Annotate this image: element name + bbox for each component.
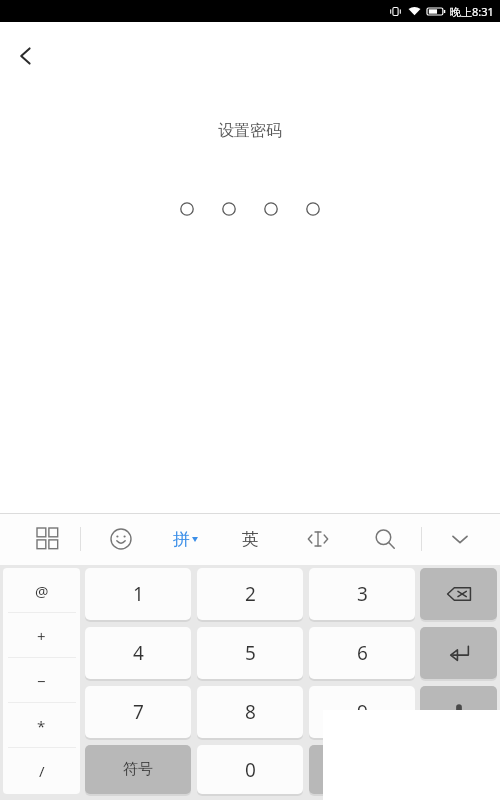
- button[interactable]: 0: [197, 745, 303, 794]
- staticText: 8: [245, 699, 256, 725]
- button[interactable]: Emoji: [97, 515, 145, 563]
- button[interactable]: Microphone: [420, 686, 497, 738]
- button[interactable]: @: [3, 568, 80, 613]
- staticText: +: [37, 626, 46, 646]
- staticText: 2: [245, 581, 256, 607]
- button[interactable]: 符号: [85, 745, 191, 794]
- button[interactable]: /: [3, 748, 80, 793]
- button[interactable]: 1: [85, 568, 191, 620]
- button[interactable]: 6: [309, 627, 415, 679]
- staticText: 1: [133, 581, 144, 607]
- staticText: 拼: [173, 529, 190, 550]
- staticText: 晚上8:31: [450, 4, 494, 19]
- button[interactable]: Backspace: [420, 568, 497, 620]
- staticText: 4: [133, 640, 144, 666]
- button[interactable]: Enter: [420, 627, 497, 679]
- button[interactable]: Hide keyboard: [436, 515, 484, 563]
- button[interactable]: 4: [85, 627, 191, 679]
- staticText: *: [37, 716, 46, 736]
- staticText: 3: [357, 581, 368, 607]
- staticText: 7: [133, 699, 144, 725]
- button[interactable]: *: [3, 703, 80, 748]
- button[interactable]: 2: [197, 568, 303, 620]
- staticText: /: [39, 761, 45, 781]
- button[interactable]: 9: [309, 686, 415, 738]
- button[interactable]: [309, 745, 415, 794]
- button[interactable]: 英: [226, 515, 274, 563]
- button[interactable]: +: [3, 613, 80, 658]
- button[interactable]: 3: [309, 568, 415, 620]
- button[interactable]: Cursor control: [294, 515, 342, 563]
- staticText: −: [37, 671, 46, 691]
- staticText: 5: [245, 640, 256, 666]
- button[interactable]: 8: [197, 686, 303, 738]
- staticText: 英: [242, 529, 259, 550]
- button[interactable]: 拼: [161, 515, 209, 563]
- staticText: 0: [245, 757, 256, 783]
- button[interactable]: 5: [197, 627, 303, 679]
- staticText: 9: [357, 699, 368, 725]
- staticText: 符号: [123, 760, 153, 779]
- button[interactable]: Back: [2, 32, 50, 80]
- staticText: 6: [357, 640, 368, 666]
- button[interactable]: 7: [85, 686, 191, 738]
- staticText: 设置密码: [0, 121, 500, 141]
- button[interactable]: Keyboard layouts: [24, 515, 72, 563]
- button[interactable]: −: [3, 658, 80, 703]
- staticText: @: [35, 581, 49, 601]
- button[interactable]: Search: [361, 515, 409, 563]
